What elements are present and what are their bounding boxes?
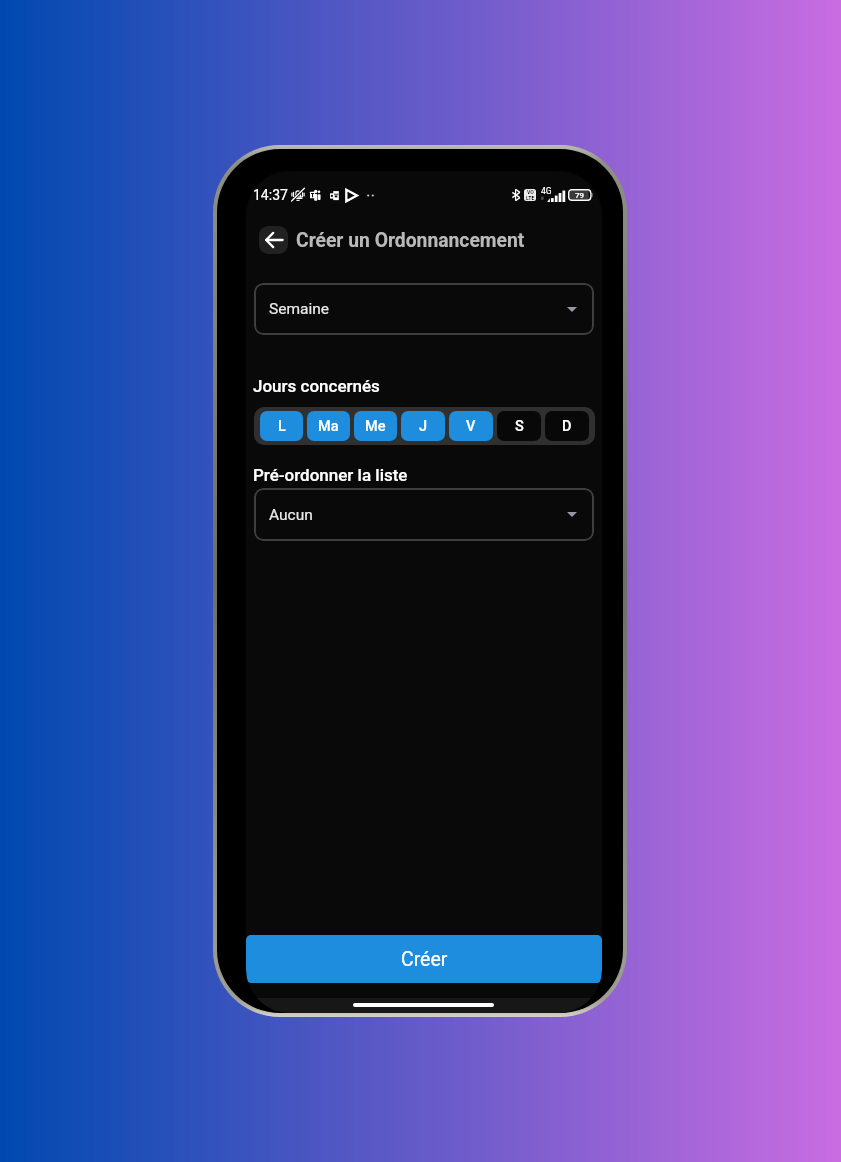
button[interactable]: J [401,411,445,441]
staticText: Me [365,418,386,435]
button[interactable]: D [545,411,589,441]
button[interactable]: Ma [307,411,350,441]
staticText: L [278,418,286,435]
button[interactable]: L [260,411,303,441]
staticText: 4G [541,186,552,196]
staticText: Pré-ordonner la liste [253,465,408,485]
staticText: 79 [575,191,585,200]
staticText: Ma [318,418,339,435]
staticText: 14:37 [253,187,288,203]
staticText: D [562,418,572,435]
staticText: Aucun [269,506,313,524]
staticText: Créer [401,948,448,971]
button[interactable]: Aucun [254,488,594,541]
button[interactable]: Semaine [254,283,594,335]
staticText: V [466,418,476,435]
staticText: Semaine [269,300,329,318]
staticText: Créer un Ordonnancement [296,229,525,252]
button[interactable]: Back [259,226,288,254]
staticText: J [419,418,428,435]
button[interactable]: Me [354,411,397,441]
staticText: LTE [526,195,535,201]
button[interactable]: S [497,411,541,441]
button[interactable]: Créer [246,935,602,983]
staticText: Jours concernés [253,376,380,396]
staticText: VO [527,189,534,195]
staticText: S [515,418,524,435]
button[interactable]: V [449,411,493,441]
